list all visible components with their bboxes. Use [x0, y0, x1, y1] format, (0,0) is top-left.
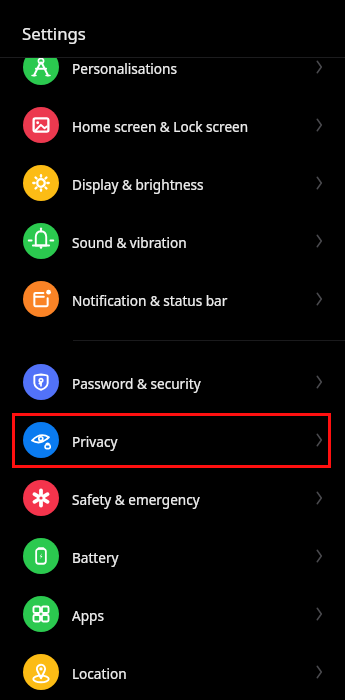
staticText: Home screen & Lock screen — [72, 117, 310, 136]
button[interactable]: Location — [0, 643, 345, 700]
staticText: Battery — [72, 548, 310, 567]
staticText: Password & security — [72, 374, 310, 393]
button[interactable]: Battery — [0, 527, 345, 585]
button[interactable]: Safety & emergency — [0, 469, 345, 527]
button[interactable]: Password & security — [0, 353, 345, 411]
staticText: Location — [72, 664, 310, 683]
staticText: Display & brightness — [72, 175, 310, 194]
staticText: Personalisations — [72, 59, 310, 78]
staticText: Privacy — [72, 432, 310, 451]
button[interactable]: Personalisations — [0, 57, 345, 96]
staticText: Apps — [72, 606, 310, 625]
staticText: Settings — [22, 22, 86, 45]
button[interactable]: Sound & vibration — [0, 212, 345, 270]
staticText: Notification & status bar — [72, 291, 310, 310]
staticText: Safety & emergency — [72, 490, 310, 509]
button[interactable]: Notification & status bar — [0, 270, 345, 328]
button[interactable]: Display & brightness — [0, 154, 345, 212]
button[interactable]: Privacy — [0, 411, 345, 469]
button[interactable]: Apps — [0, 585, 345, 643]
staticText: Sound & vibration — [72, 233, 310, 252]
button[interactable]: Home screen & Lock screen — [0, 96, 345, 154]
